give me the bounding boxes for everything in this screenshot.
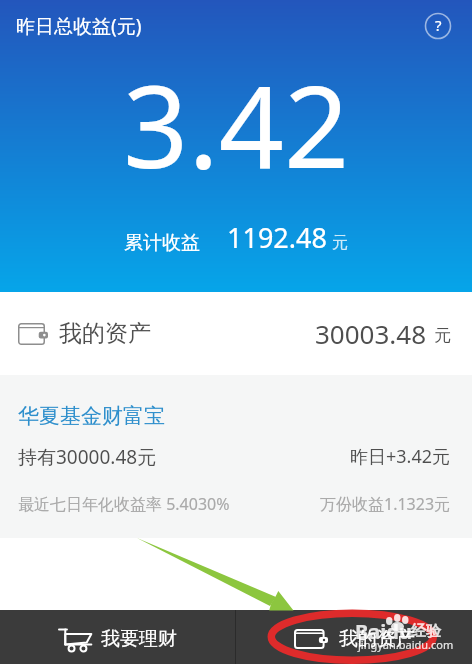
staticText: 昨日+3.42元 [350, 444, 451, 469]
staticText: Baidu [355, 618, 412, 645]
button[interactable]: 我的资产 [0, 292, 472, 375]
staticText: 元 [434, 325, 451, 346]
button[interactable]: 我要理财 [0, 610, 235, 664]
staticText: 持有30000.48元 [18, 444, 157, 470]
staticText: 1192.48 [227, 219, 327, 256]
staticText: 元 [332, 233, 348, 253]
staticText: 昨日总收益(元) [16, 13, 142, 39]
staticText: jingyan.baidu.com [358, 637, 454, 652]
button[interactable]: 华夏基金财富宝 [0, 375, 472, 538]
staticText: 3.42 [123, 46, 350, 201]
staticText: ? [435, 15, 442, 35]
staticText: 华夏基金财富宝 [18, 403, 165, 429]
staticText: 我的资产 [59, 319, 151, 348]
staticText: 我的资产 [339, 627, 415, 651]
staticText: 累计收益 [124, 231, 200, 255]
button[interactable]: Help [424, 12, 452, 40]
staticText: 30003.48 [315, 316, 427, 351]
button[interactable]: 我的资产 [236, 610, 472, 664]
staticText: 经验 [411, 622, 441, 641]
staticText: 我要理财 [101, 627, 177, 651]
staticText: 最近七日年化收益率 5.4030% [18, 493, 230, 515]
staticText: 万份收益1.1323元 [320, 493, 451, 515]
